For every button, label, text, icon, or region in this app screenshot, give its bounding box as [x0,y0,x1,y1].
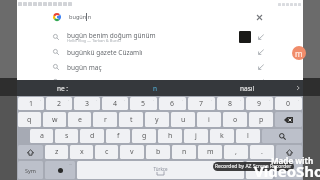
staticText: · [40,98,42,103]
button[interactable]: g [132,129,156,143]
button[interactable]: t [119,112,143,127]
staticText: m [295,48,303,59]
button[interactable]: w [43,112,66,127]
staticText: ne : [57,84,69,93]
button[interactable]: i [197,112,221,127]
button[interactable]: bugünkü gazete Cüzamlı [17,44,303,59]
button[interactable]: Emoji [45,161,75,179]
button[interactable]: . [246,161,273,179]
staticText: h [168,131,173,141]
staticText: · [298,98,300,103]
button[interactable]: y [145,112,169,127]
staticText: bugün maç [67,63,102,72]
button[interactable]: Search [262,129,302,143]
button[interactable]: l [236,129,260,143]
staticText: bugün n [69,13,92,21]
staticText: 6 [170,99,175,109]
staticText: o [233,115,238,125]
staticText: . [261,147,263,157]
button[interactable]: n [172,145,196,159]
button[interactable]: s [55,129,78,143]
staticText: r [104,115,107,125]
button[interactable]: u [171,112,195,127]
staticText: t [130,115,133,125]
staticText: q [27,115,32,125]
button[interactable]: Chat bubble [292,46,306,60]
button[interactable]: 4 [102,97,128,110]
staticText: m [207,147,214,157]
button[interactable]: Clear search [254,12,265,23]
button[interactable]: nasıl [201,80,293,96]
button[interactable]: Sym [18,161,43,179]
staticText: 0 [286,99,291,109]
staticText: s [65,131,69,141]
button[interactable]: Insert suggestion [256,62,266,72]
button[interactable]: Insert suggestion [256,32,266,42]
button[interactable]: More suggestions [293,80,303,96]
staticText: 3 [85,99,90,109]
button[interactable]: h [158,129,182,143]
button[interactable]: e [68,112,91,127]
staticText: · [96,98,98,103]
staticText: p [259,115,264,125]
button[interactable]: 2 [46,97,72,110]
staticText: u [181,115,186,125]
button[interactable]: z [45,145,68,159]
button[interactable]: o [223,112,247,127]
staticText: i [208,115,210,125]
button[interactable]: v [120,145,144,159]
staticText: e [78,115,82,125]
staticText: · [68,98,70,103]
button[interactable]: x [70,145,93,159]
button[interactable]: c [95,145,118,159]
staticText: Türkçe [153,166,168,172]
staticText: f [117,131,120,141]
button[interactable]: Enter [275,161,302,179]
button[interactable]: bugün benim doğum günüm [17,29,303,44]
button[interactable]: 9 [246,97,273,110]
button[interactable]: f [106,129,130,143]
button[interactable]: 8 [217,97,244,110]
button[interactable]: j [184,129,208,143]
button[interactable]: . [250,145,274,159]
button[interactable]: 7 [188,97,215,110]
staticText: 9 [257,99,262,109]
button[interactable]: Backspace [275,112,302,127]
button[interactable]: Insert suggestion [256,77,266,87]
button[interactable]: n [109,80,201,96]
button[interactable]: k [210,129,234,143]
staticText: c [105,147,109,157]
button[interactable]: m [198,145,222,159]
button[interactable]: d [80,129,104,143]
button[interactable]: b [146,145,170,159]
button[interactable]: bugün ne zaman [17,74,303,89]
staticText: bugünkü gazete Cüzamlı [67,48,143,57]
staticText: . [259,165,261,175]
button[interactable]: Shift [18,145,43,159]
button[interactable]: bugün maç [17,59,303,74]
button[interactable]: Türkçe [77,161,244,179]
staticText: · [153,98,155,103]
staticText: · [240,98,242,103]
button[interactable]: q [18,112,41,127]
button[interactable]: 6 [159,97,186,110]
button[interactable]: 0 [275,97,302,110]
staticText: g [142,131,147,141]
staticText: Made with [271,155,314,166]
button[interactable]: 3 [74,97,100,110]
staticText: Sym [25,167,36,174]
button[interactable]: a [30,129,53,143]
button[interactable]: 5 [130,97,157,110]
button[interactable]: ne : [17,80,109,96]
staticText: bugün ne zaman [67,78,119,87]
button[interactable]: p [249,112,273,127]
button[interactable]: bugün n [17,8,303,25]
staticText: j [195,131,197,141]
staticText: , [235,147,237,157]
button[interactable]: , [224,145,248,159]
staticText: 4 [113,99,118,109]
button[interactable]: r [93,112,117,127]
button[interactable]: Insert suggestion [256,47,266,57]
button[interactable]: Shift [276,145,302,159]
button[interactable]: 1 [18,97,44,110]
